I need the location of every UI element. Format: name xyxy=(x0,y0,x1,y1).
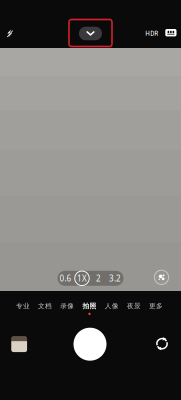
button[interactable]: 2 xyxy=(90,271,106,286)
button[interactable]: 拍照 xyxy=(78,300,101,316)
button[interactable]: 3.2 xyxy=(106,271,123,286)
staticText: 夜景 xyxy=(127,302,141,310)
staticText: 拍照 xyxy=(82,302,96,310)
button[interactable]: 专业 xyxy=(12,300,34,316)
staticText: 人像 xyxy=(105,302,119,310)
button[interactable]: HDR xyxy=(142,25,162,41)
button[interactable]: 录像 xyxy=(56,300,78,316)
staticText: 0.6 xyxy=(59,273,71,284)
button[interactable]: Flip camera xyxy=(150,332,174,356)
button[interactable]: 0.6 xyxy=(57,271,73,286)
button[interactable]: 文档 xyxy=(34,300,56,316)
button[interactable]: 夜景 xyxy=(123,300,145,316)
staticText: HDR xyxy=(145,29,158,38)
staticText: 2 xyxy=(96,273,101,284)
button[interactable]: Gallery xyxy=(11,336,27,352)
staticText: 1X xyxy=(77,273,87,284)
staticText: 3.2 xyxy=(109,273,121,284)
button[interactable]: 1X xyxy=(73,271,90,286)
button[interactable]: Flash off xyxy=(0,22,20,44)
button[interactable]: Camera settings drawer xyxy=(79,27,102,40)
button[interactable]: Beauty and filters xyxy=(151,267,171,287)
staticText: 更多 xyxy=(149,302,163,310)
button[interactable]: 人像 xyxy=(101,300,123,316)
staticText: 专业 xyxy=(16,302,30,310)
button[interactable]: Shutter xyxy=(73,328,106,361)
button[interactable]: Battery xyxy=(163,26,178,40)
staticText: 录像 xyxy=(60,302,74,310)
button[interactable]: 更多 xyxy=(145,300,167,316)
staticText: 文档 xyxy=(38,302,52,310)
